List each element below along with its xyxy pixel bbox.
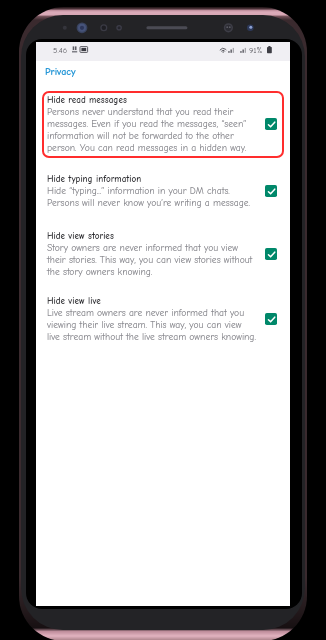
button[interactable]: Hide read messages [42,91,284,158]
staticText: person. You can read messages in a hidde… [47,142,247,154]
staticText: their stories. This way, you can view st… [47,254,253,266]
staticText: Hide typing information [47,172,142,185]
staticText: Persons never understand that you read t… [47,106,234,118]
button[interactable]: Hide view live [42,292,284,347]
button[interactable]: Enabled toggle [265,248,277,260]
button[interactable]: Enabled toggle [265,313,277,325]
staticText: information will not be forwarded to the… [47,130,234,142]
staticText: Hide “typing...” information in your DM … [47,185,230,197]
staticText: live stream without the live stream owne… [47,331,256,343]
button[interactable]: Hide view stories [42,227,284,282]
staticText: 5.46 [53,46,68,55]
staticText: Live stream owners are never informed th… [47,307,245,319]
staticText: Privacy [45,66,76,77]
staticText: 91% [249,46,263,55]
staticText: Persons will never know you’re writing a… [47,197,251,209]
staticText: the story owners knowing. [47,266,153,278]
button[interactable]: Hide typing information [42,170,284,214]
button[interactable]: Enabled toggle [265,118,277,130]
staticText: Hide read messages [47,93,127,106]
staticText: viewing their live stream. This way, you… [47,319,242,331]
staticText: Story owners are never informed that you… [47,242,239,254]
staticText: Hide view stories [47,229,114,242]
staticText: messages. Even if you read the messages,… [47,118,247,130]
staticText: Hide view live [47,294,101,307]
button[interactable]: Privacy [42,64,79,79]
button[interactable]: Enabled toggle [265,185,277,197]
